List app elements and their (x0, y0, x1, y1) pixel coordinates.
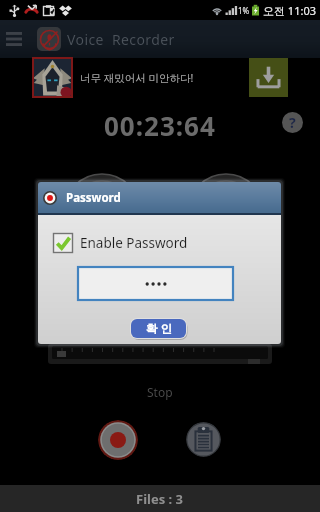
button[interactable]: Download (249, 58, 288, 97)
button[interactable]: Menu (0, 20, 28, 58)
button[interactable]: Record (98, 420, 138, 460)
staticText: 확 인 (146, 321, 172, 337)
staticText: ? (289, 113, 296, 132)
button[interactable]: Enable Password (52, 232, 74, 254)
staticText: Stop (147, 384, 173, 400)
button[interactable]: Recording list (186, 422, 221, 457)
staticText: Enable Password (80, 234, 188, 252)
staticText: 1% (238, 5, 250, 16)
button[interactable]: 확 인 (131, 319, 186, 338)
button[interactable]: Help (282, 112, 303, 133)
staticText: Password (66, 190, 121, 206)
staticText: 오전 11:03 (263, 3, 316, 18)
button[interactable] (78, 267, 233, 300)
staticText: Voice Recorder (67, 30, 175, 49)
staticText: Files : 3 (136, 490, 184, 508)
staticText: 00:23:64 (104, 108, 216, 143)
staticText: 너무 재밌어서 미안하다! (80, 71, 194, 85)
